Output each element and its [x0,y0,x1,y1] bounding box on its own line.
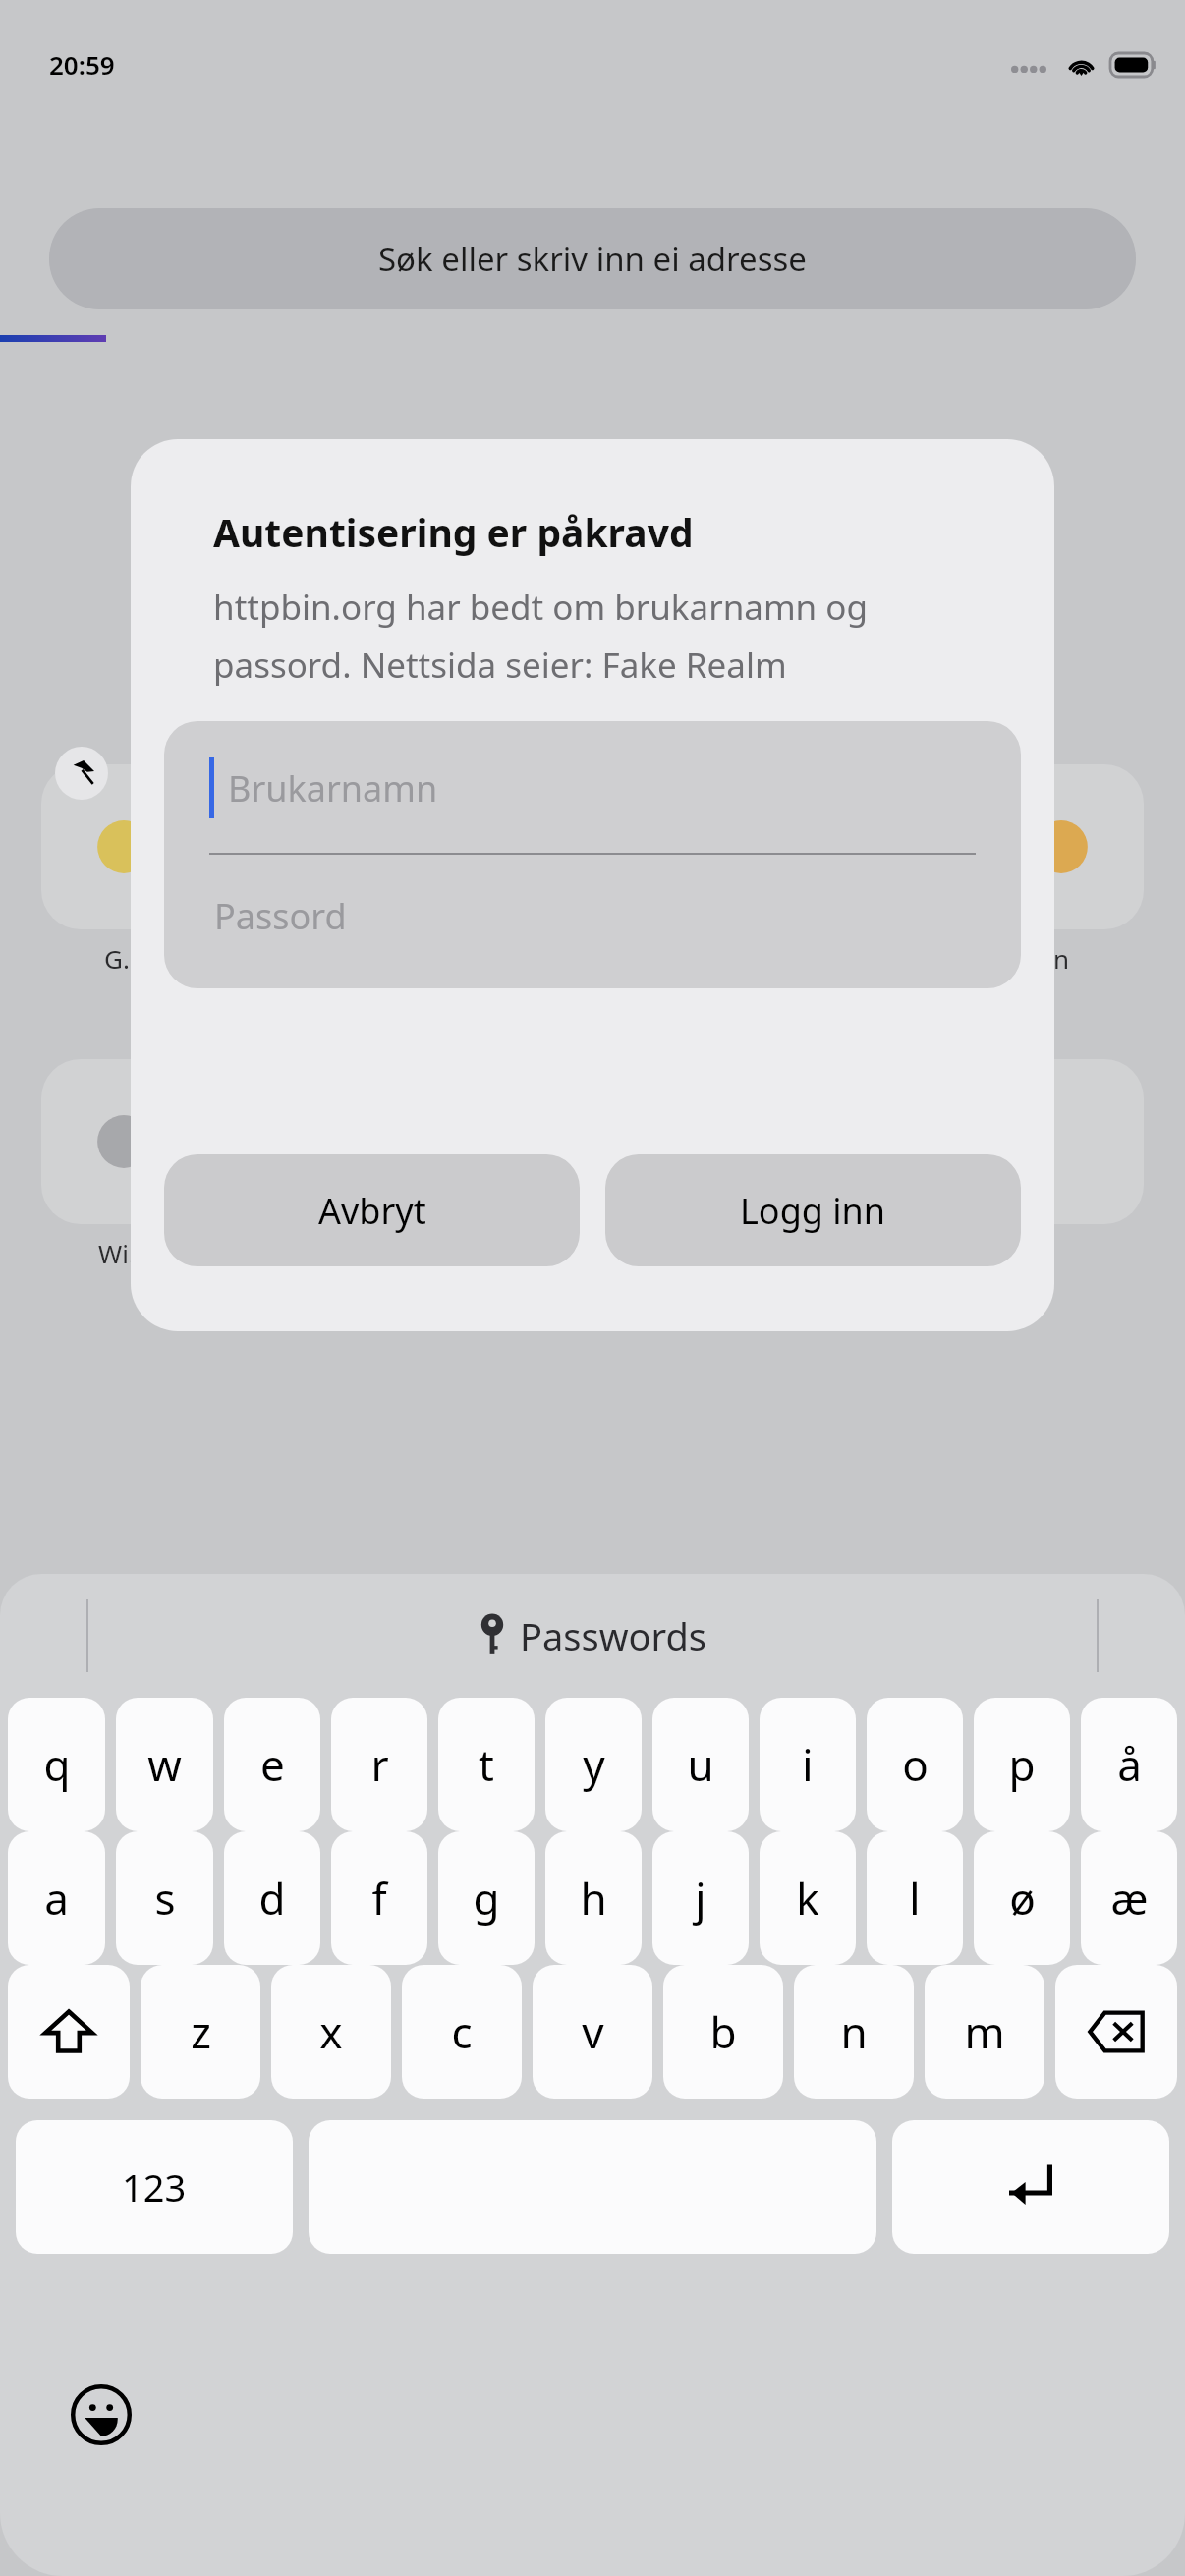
staticText: r [370,1735,389,1794]
staticText: ø [1009,1869,1036,1928]
staticText: a [44,1869,69,1928]
button[interactable]: u [652,1698,749,1831]
staticText: Passwords [520,1610,707,1661]
staticText: httpbin.org har bedt om brukarnamn og pa… [213,584,986,688]
button[interactable]: Backspace [1055,1965,1177,2099]
staticText: g [473,1869,500,1928]
button[interactable]: f [331,1831,427,1965]
button[interactable]: Søk eller skriv inn ei adresse [49,208,1136,309]
button[interactable]: h [545,1831,642,1965]
button[interactable]: z [141,1965,260,2099]
staticText: l [909,1869,921,1928]
button[interactable]: 123 [16,2120,293,2254]
button[interactable]: Emoji [61,2375,141,2455]
staticText: æ [1110,1869,1149,1928]
button[interactable]: Passord [164,855,1021,988]
staticText: w [147,1735,182,1794]
button[interactable] [354,764,519,929]
button[interactable]: æ [1081,1831,1177,1965]
staticText: u [687,1735,714,1794]
staticText: k [796,1869,819,1928]
button[interactable] [41,1059,206,1224]
button[interactable]: o [867,1698,963,1831]
button[interactable]: l [867,1831,963,1965]
staticText: m [964,2002,1005,2061]
staticText: t [479,1735,494,1794]
staticText: h [580,1869,607,1928]
button[interactable]: b [663,1965,783,2099]
staticText: q [43,1735,71,1794]
button[interactable] [979,764,1144,929]
button[interactable]: x [271,1965,391,2099]
button[interactable] [666,1059,831,1224]
staticText: Passord [214,892,347,940]
staticText: p [1008,1735,1036,1794]
button[interactable]: d [224,1831,320,1965]
staticText: Logg inn [740,1187,886,1235]
button[interactable]: w [116,1698,213,1831]
button[interactable]: Shift [8,1965,130,2099]
button[interactable]: e [224,1698,320,1831]
button[interactable]: t [438,1698,535,1831]
button[interactable]: p [974,1698,1070,1831]
button[interactable]: a [8,1831,105,1965]
button[interactable]: g [438,1831,535,1965]
button[interactable]: å [1081,1698,1177,1831]
staticText: Avbryt [318,1187,426,1235]
button[interactable]: ø [974,1831,1070,1965]
button[interactable]: q [8,1698,105,1831]
staticText: 123 [122,2161,187,2212]
button[interactable]: n [794,1965,914,2099]
staticText: c [451,2002,473,2061]
staticText: å [1117,1735,1142,1794]
staticText: x [319,2002,343,2061]
staticText: n [1053,941,1070,976]
button[interactable]: Avbryt [164,1154,580,1266]
button[interactable] [354,1059,519,1224]
button[interactable]: c [402,1965,522,2099]
staticText: b [709,2002,737,2061]
staticText: Brukarnamn [228,764,438,812]
staticText: d [258,1869,286,1928]
staticText: s [154,1869,176,1928]
staticText: z [191,2002,211,2061]
button[interactable]: Logg inn [605,1154,1021,1266]
staticText: Søk eller skriv inn ei adresse [378,237,807,281]
button[interactable]: m [925,1965,1044,2099]
button[interactable] [666,764,831,929]
button[interactable]: r [331,1698,427,1831]
staticText: y [583,1735,605,1794]
staticText: f [371,1869,387,1928]
button[interactable]: i [760,1698,856,1831]
button[interactable]: Space [309,2120,876,2254]
staticText: o [902,1735,929,1794]
button[interactable]: Enter [892,2120,1169,2254]
button[interactable]: Brukarnamn [164,721,1021,855]
staticText: G… [104,941,143,976]
button[interactable]: s [116,1831,213,1965]
staticText: v [582,2002,604,2061]
button[interactable]: k [760,1831,856,1965]
button[interactable] [41,764,206,929]
staticText: j [695,1869,706,1928]
button[interactable]: j [652,1831,749,1965]
staticText: Autentisering er påkravd [213,506,694,558]
staticText: i [802,1735,814,1794]
button[interactable]: v [533,1965,652,2099]
staticText: Wi… [98,1236,149,1270]
staticText: e [260,1735,285,1794]
button[interactable]: y [545,1698,642,1831]
button[interactable] [979,1059,1144,1224]
staticText: n [840,2002,868,2061]
staticText: 20:59 [49,47,115,82]
